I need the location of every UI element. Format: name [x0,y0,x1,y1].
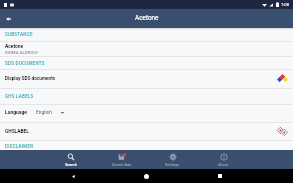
staticText: SUBSTANCE [5,32,33,37]
staticText: GHSLABEL [5,129,29,135]
staticText: SDS DOCUMENTS [5,61,45,66]
staticText: Settings [165,162,180,167]
button[interactable]: Language [0,105,293,122]
button[interactable]: GHSLABEL [0,123,293,140]
button[interactable]: About [198,150,249,169]
staticText: DISCLAIMER [5,144,34,149]
staticText: English [36,109,52,115]
staticText: Display SDS documents [5,76,56,82]
other: Back [71,174,76,179]
staticText: Language [5,109,28,115]
staticText: Saved data [112,162,132,167]
other: Home [144,174,149,179]
staticText: Acetone [5,43,24,49]
staticText: Search [65,162,77,167]
staticText: SIGMA ALDRICH [5,50,38,55]
staticText: GHS LABELS [5,94,34,99]
other: GHS hazard pictograms [277,126,288,137]
button[interactable]: Search [45,150,96,169]
button[interactable]: Saved data [96,150,147,169]
staticText: 1:08 [281,2,290,7]
button[interactable]: Settings [147,150,198,169]
button[interactable]: Display SDS documents [0,70,293,88]
staticText: Acetone [135,14,159,22]
button[interactable]: Back [0,9,17,28]
button[interactable]: Acetone [0,42,293,56]
other: NFPA hazard rating [277,74,288,85]
staticText: About [218,162,229,167]
